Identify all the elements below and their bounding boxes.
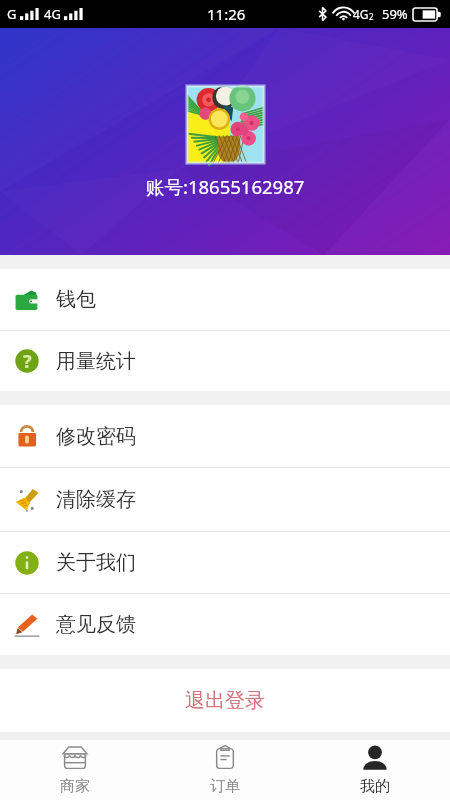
button[interactable]: 我的 — [300, 745, 450, 796]
button[interactable]: 关于我们 — [0, 532, 450, 593]
staticText: 钱包 — [56, 287, 96, 312]
button[interactable]: 退出登录 — [0, 669, 450, 732]
button[interactable]: 钱包 — [0, 269, 450, 330]
staticText: 11:26 — [207, 4, 246, 24]
staticText: 账号:18655162987 — [146, 174, 305, 199]
button[interactable]: ? — [0, 331, 450, 391]
staticText: 2 — [369, 11, 374, 22]
staticText: 我的 — [360, 777, 390, 796]
button[interactable]: 清除缓存 — [0, 468, 450, 531]
staticText: G — [7, 5, 17, 23]
staticText: 意见反馈 — [56, 612, 136, 637]
staticText: 59% — [382, 5, 408, 23]
button[interactable]: 订单 — [150, 745, 300, 796]
staticText: 修改密码 — [56, 424, 136, 449]
staticText: 退出登录 — [185, 688, 265, 713]
staticText: 用量统计 — [56, 349, 136, 374]
staticText: 订单 — [210, 777, 240, 796]
staticText: 4G — [353, 6, 369, 22]
staticText: ? — [23, 349, 32, 374]
staticText: 清除缓存 — [56, 487, 136, 512]
button[interactable]: 修改密码 — [0, 405, 450, 467]
staticText: 商家 — [60, 777, 90, 796]
button[interactable]: 商家 — [0, 745, 150, 796]
staticText: 4G — [44, 5, 61, 23]
button[interactable]: 意见反馈 — [0, 594, 450, 655]
staticText: 关于我们 — [56, 550, 136, 575]
